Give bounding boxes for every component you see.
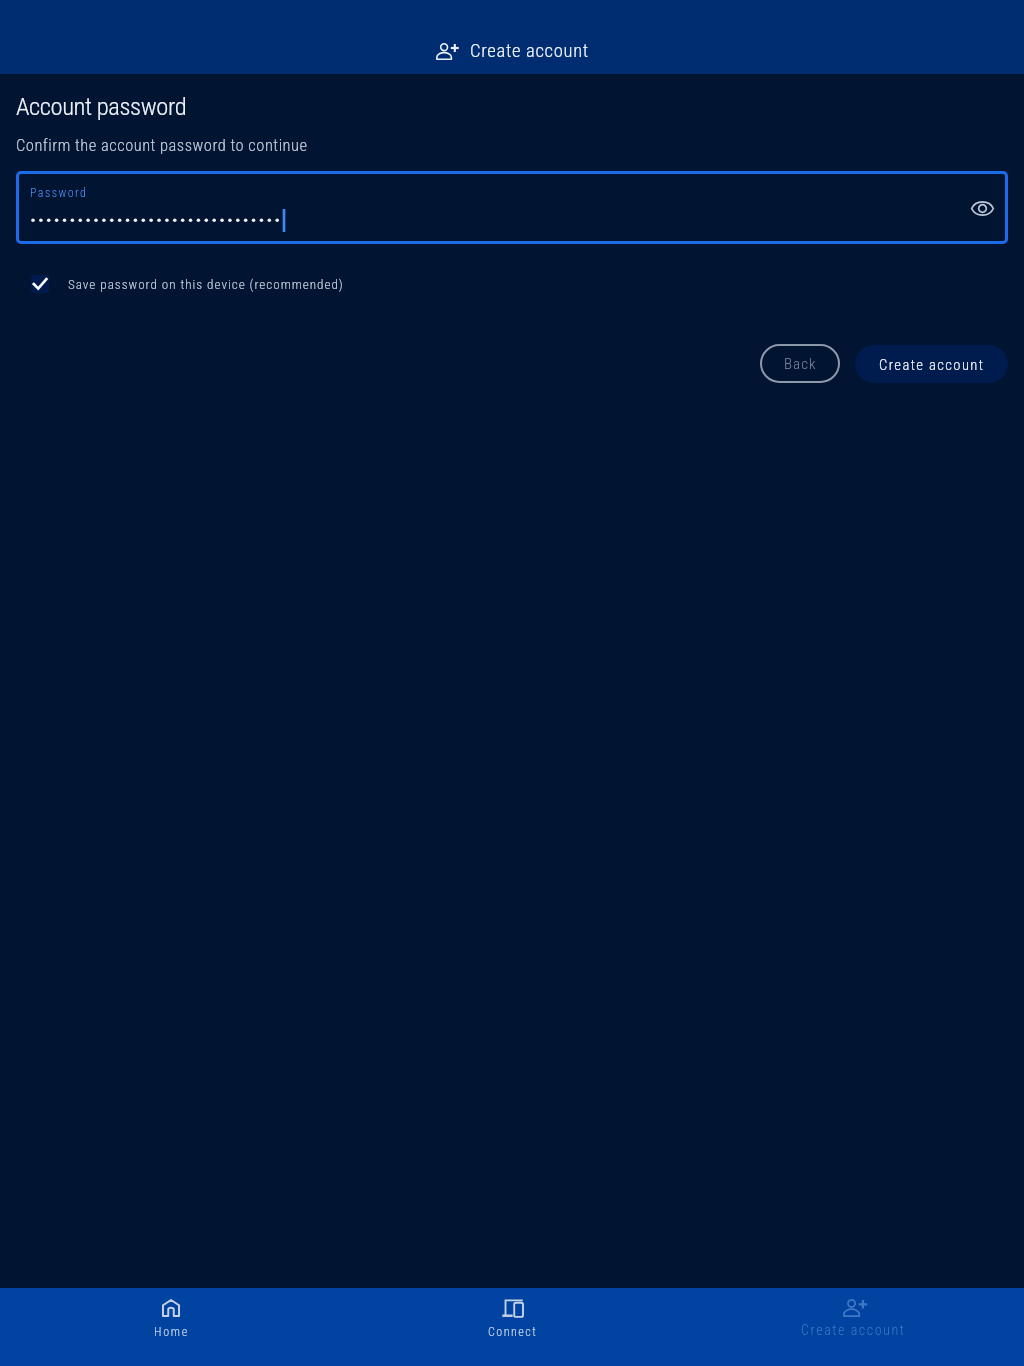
button[interactable]: Save password on this device (recommende… [31, 275, 344, 293]
staticText: Save password on this device (recommende… [68, 277, 344, 292]
button[interactable]: Show password [962, 188, 1002, 228]
staticText: Create account [470, 40, 589, 62]
staticText: Password [30, 186, 88, 200]
button[interactable]: Create account [855, 345, 1008, 383]
button[interactable]: Create account [0, 0, 1024, 74]
staticText: Confirm the account password to continue [16, 136, 308, 155]
staticText: Account password [16, 92, 187, 121]
staticText: Connect [488, 1325, 538, 1339]
staticText: Back [784, 355, 817, 373]
staticText: Create account [801, 1322, 906, 1338]
staticText: Home [154, 1325, 189, 1339]
staticText: Create account [879, 356, 985, 373]
button[interactable]: Password [16, 171, 1008, 244]
button[interactable]: Connect [342, 1288, 683, 1366]
button[interactable]: Home [0, 1288, 342, 1366]
button[interactable]: Create account [683, 1288, 1024, 1366]
button[interactable]: Back [760, 344, 840, 383]
